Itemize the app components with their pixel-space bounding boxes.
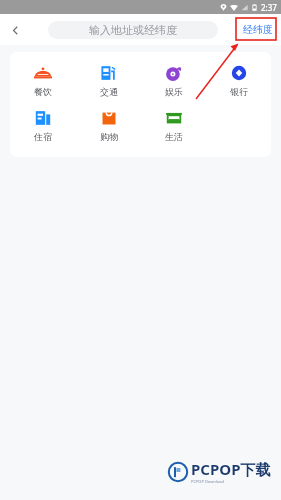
staticText: 生活 bbox=[165, 131, 183, 142]
staticText: 购物 bbox=[100, 131, 118, 142]
button[interactable]: Back bbox=[0, 15, 30, 45]
button[interactable]: 生活 bbox=[165, 108, 183, 143]
staticText: 餐饮 bbox=[34, 86, 52, 97]
staticText: 娱乐 bbox=[165, 86, 183, 97]
button[interactable]: 输入地址或经纬度 bbox=[48, 21, 218, 39]
staticText: 经纬度 bbox=[243, 23, 273, 36]
staticText: 输入地址或经纬度 bbox=[89, 23, 177, 37]
button[interactable]: 住宿 bbox=[34, 108, 52, 143]
button[interactable]: 银行 bbox=[230, 63, 248, 98]
staticText: 交通 bbox=[100, 86, 118, 97]
button[interactable]: 娱乐 bbox=[165, 63, 183, 98]
button[interactable]: 经纬度 bbox=[243, 23, 273, 36]
staticText: 银行 bbox=[230, 86, 248, 97]
staticText: PCPOP Download bbox=[191, 479, 224, 484]
button[interactable]: 餐饮 bbox=[34, 63, 52, 98]
staticText: 2:37 bbox=[261, 2, 277, 13]
staticText: PCPOP下载 bbox=[191, 459, 271, 479]
button[interactable]: 交通 bbox=[100, 63, 118, 98]
staticText: 住宿 bbox=[34, 131, 52, 142]
button[interactable]: 购物 bbox=[100, 108, 118, 143]
